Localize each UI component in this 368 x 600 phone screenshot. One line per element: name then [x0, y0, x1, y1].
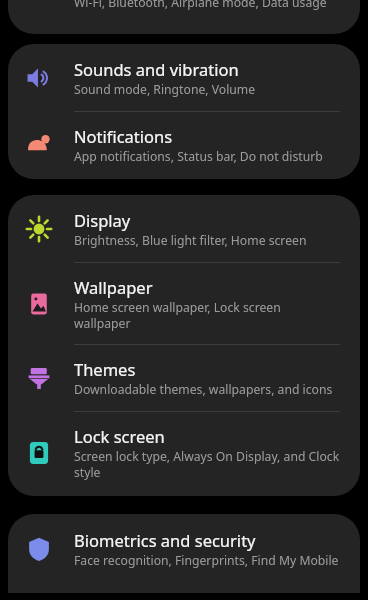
button[interactable]: Wallpaper: [8, 263, 360, 344]
staticText: Biometrics and security: [74, 529, 256, 551]
button[interactable]: Biometrics and security: [8, 514, 360, 593]
button[interactable]: Notifications: [8, 112, 360, 179]
button[interactable]: Biometrics and security: [8, 514, 360, 593]
button[interactable]: Themes: [8, 345, 360, 411]
button[interactable]: Wi-Fi, Bluetooth, Airplane mode, Data us…: [8, 0, 360, 34]
button[interactable]: Sounds and vibration: [8, 44, 360, 111]
staticText: Notifications: [74, 125, 173, 147]
staticText: Sound mode, Ringtone, Volume: [74, 81, 256, 98]
staticText: Brightness, Blue light filter, Home scre…: [74, 232, 307, 249]
staticText: Home screen wallpaper, Lock screen wallp…: [74, 299, 340, 331]
button[interactable]: Lock screen: [8, 412, 360, 496]
staticText: Downloadable themes, wallpapers, and ico…: [74, 381, 333, 398]
staticText: Wi-Fi, Bluetooth, Airplane mode, Data us…: [74, 0, 327, 11]
staticText: Face recognition, Fingerprints, Find My …: [74, 552, 339, 569]
button[interactable]: Display: [8, 195, 360, 262]
staticText: Sounds and vibration: [74, 58, 239, 80]
staticText: Display: [74, 209, 131, 231]
staticText: Screen lock type, Always On Display, and…: [74, 448, 340, 480]
staticText: Wallpaper: [74, 276, 153, 298]
staticText: Themes: [74, 358, 136, 380]
staticText: Lock screen: [74, 425, 165, 447]
staticText: App notifications, Status bar, Do not di…: [74, 148, 323, 165]
